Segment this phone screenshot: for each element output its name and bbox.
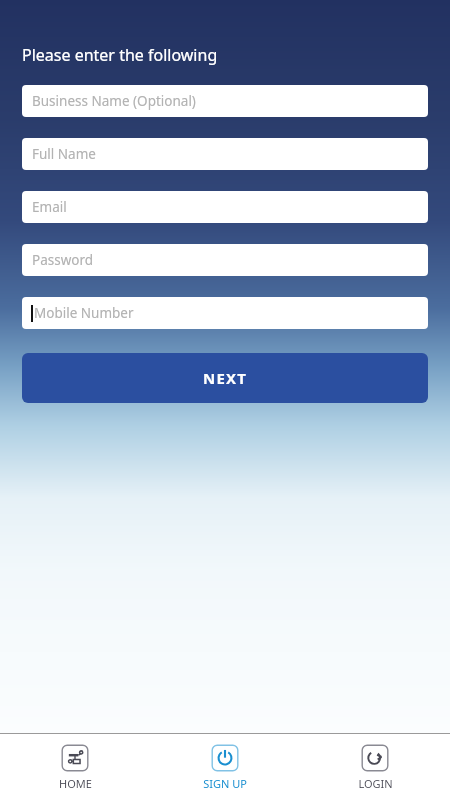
- staticText: NEXT: [203, 368, 248, 388]
- button[interactable]: Full Name: [22, 138, 428, 170]
- button[interactable]: Mobile Number: [22, 297, 428, 329]
- staticText: Password: [32, 251, 94, 269]
- staticText: SIGN UP: [203, 776, 247, 791]
- staticText: HOME: [59, 776, 92, 791]
- staticText: Business Name (Optional): [32, 92, 196, 110]
- staticText: Mobile Number: [34, 304, 134, 322]
- staticText: LOGIN: [358, 776, 393, 791]
- button[interactable]: LOGIN: [300, 744, 450, 791]
- button[interactable]: Email: [22, 191, 428, 223]
- button[interactable]: SIGN UP: [150, 744, 300, 791]
- button[interactable]: HOME: [0, 744, 150, 791]
- staticText: Email: [32, 198, 67, 216]
- staticText: Please enter the following: [22, 44, 218, 66]
- button[interactable]: NEXT: [22, 353, 428, 403]
- button[interactable]: Password: [22, 244, 428, 276]
- button[interactable]: Business Name (Optional): [22, 85, 428, 117]
- staticText: Full Name: [32, 145, 96, 163]
